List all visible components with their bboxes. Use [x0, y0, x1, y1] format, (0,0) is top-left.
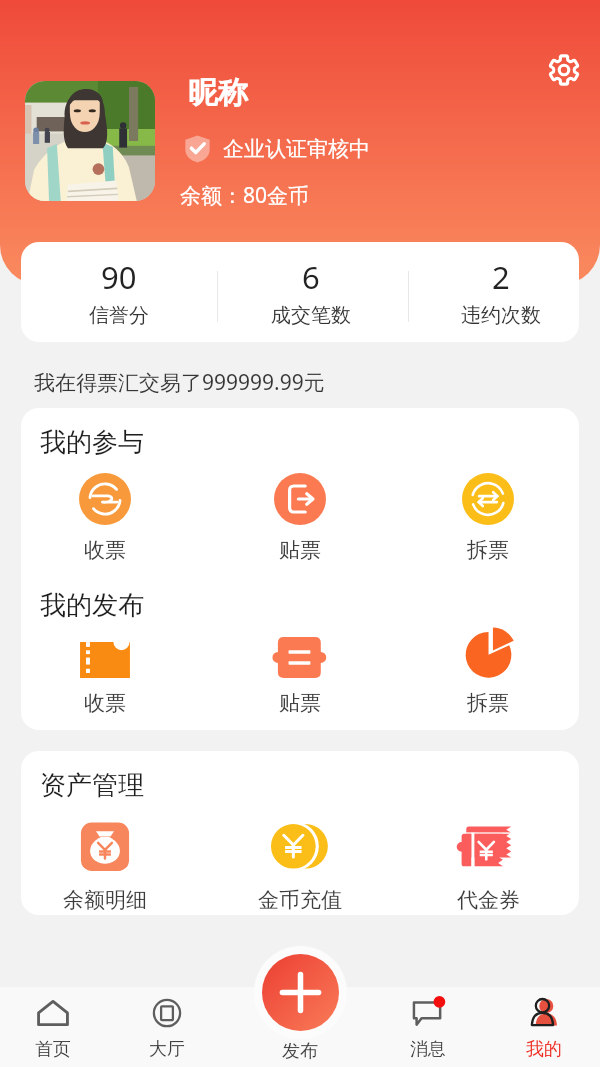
staticText: 资产管理	[40, 769, 144, 802]
button[interactable]: 代金券	[428, 817, 548, 913]
staticText: 昵称	[188, 74, 248, 112]
button[interactable]: 首页	[3, 995, 103, 1061]
staticText: 代金券	[457, 887, 520, 913]
button[interactable]: 2	[431, 256, 571, 328]
button[interactable]: Settings	[545, 51, 583, 89]
staticText: 消息	[410, 1038, 446, 1061]
button[interactable]: 金币充值	[240, 817, 360, 913]
staticText: 拆票	[467, 690, 509, 716]
button[interactable]: Publish	[254, 946, 347, 1039]
staticText: 6	[302, 256, 320, 298]
staticText: 我的参与	[40, 426, 144, 459]
staticText: 贴票	[279, 537, 321, 563]
button[interactable]: Avatar	[25, 81, 155, 201]
button[interactable]: 6	[241, 256, 381, 328]
staticText: 信誉分	[89, 303, 149, 328]
button[interactable]: 我的	[494, 995, 594, 1061]
button[interactable]: 收票	[45, 626, 165, 716]
button[interactable]: 贴票	[240, 473, 360, 563]
staticText: 违约次数	[461, 303, 541, 328]
staticText: 收票	[84, 537, 126, 563]
button[interactable]: 消息	[378, 995, 478, 1061]
staticText: 余额明细	[63, 887, 147, 913]
staticText: 90	[101, 256, 137, 298]
button[interactable]: 大厅	[117, 995, 217, 1061]
staticText: 2	[492, 256, 510, 298]
button[interactable]: 贴票	[240, 626, 360, 716]
button[interactable]: 90	[49, 256, 189, 328]
staticText: 发布	[282, 1040, 318, 1063]
staticText: 拆票	[467, 537, 509, 563]
button[interactable]: 收票	[45, 473, 165, 563]
staticText: 我在得票汇交易了999999.99元	[34, 368, 325, 397]
button[interactable]: 拆票	[428, 473, 548, 563]
button[interactable]: 拆票	[428, 626, 548, 716]
staticText: 我的	[526, 1038, 562, 1061]
staticText: 我的发布	[40, 589, 144, 622]
staticText: 收票	[84, 690, 126, 716]
staticText: 首页	[35, 1038, 71, 1061]
button[interactable]: 余额明细	[45, 817, 165, 913]
staticText: 贴票	[279, 690, 321, 716]
staticText: 成交笔数	[271, 303, 351, 328]
staticText: 企业认证审核中	[223, 136, 370, 162]
staticText: 大厅	[149, 1038, 185, 1061]
staticText: 余额：80金币	[180, 181, 310, 210]
staticText: 金币充值	[258, 887, 342, 913]
